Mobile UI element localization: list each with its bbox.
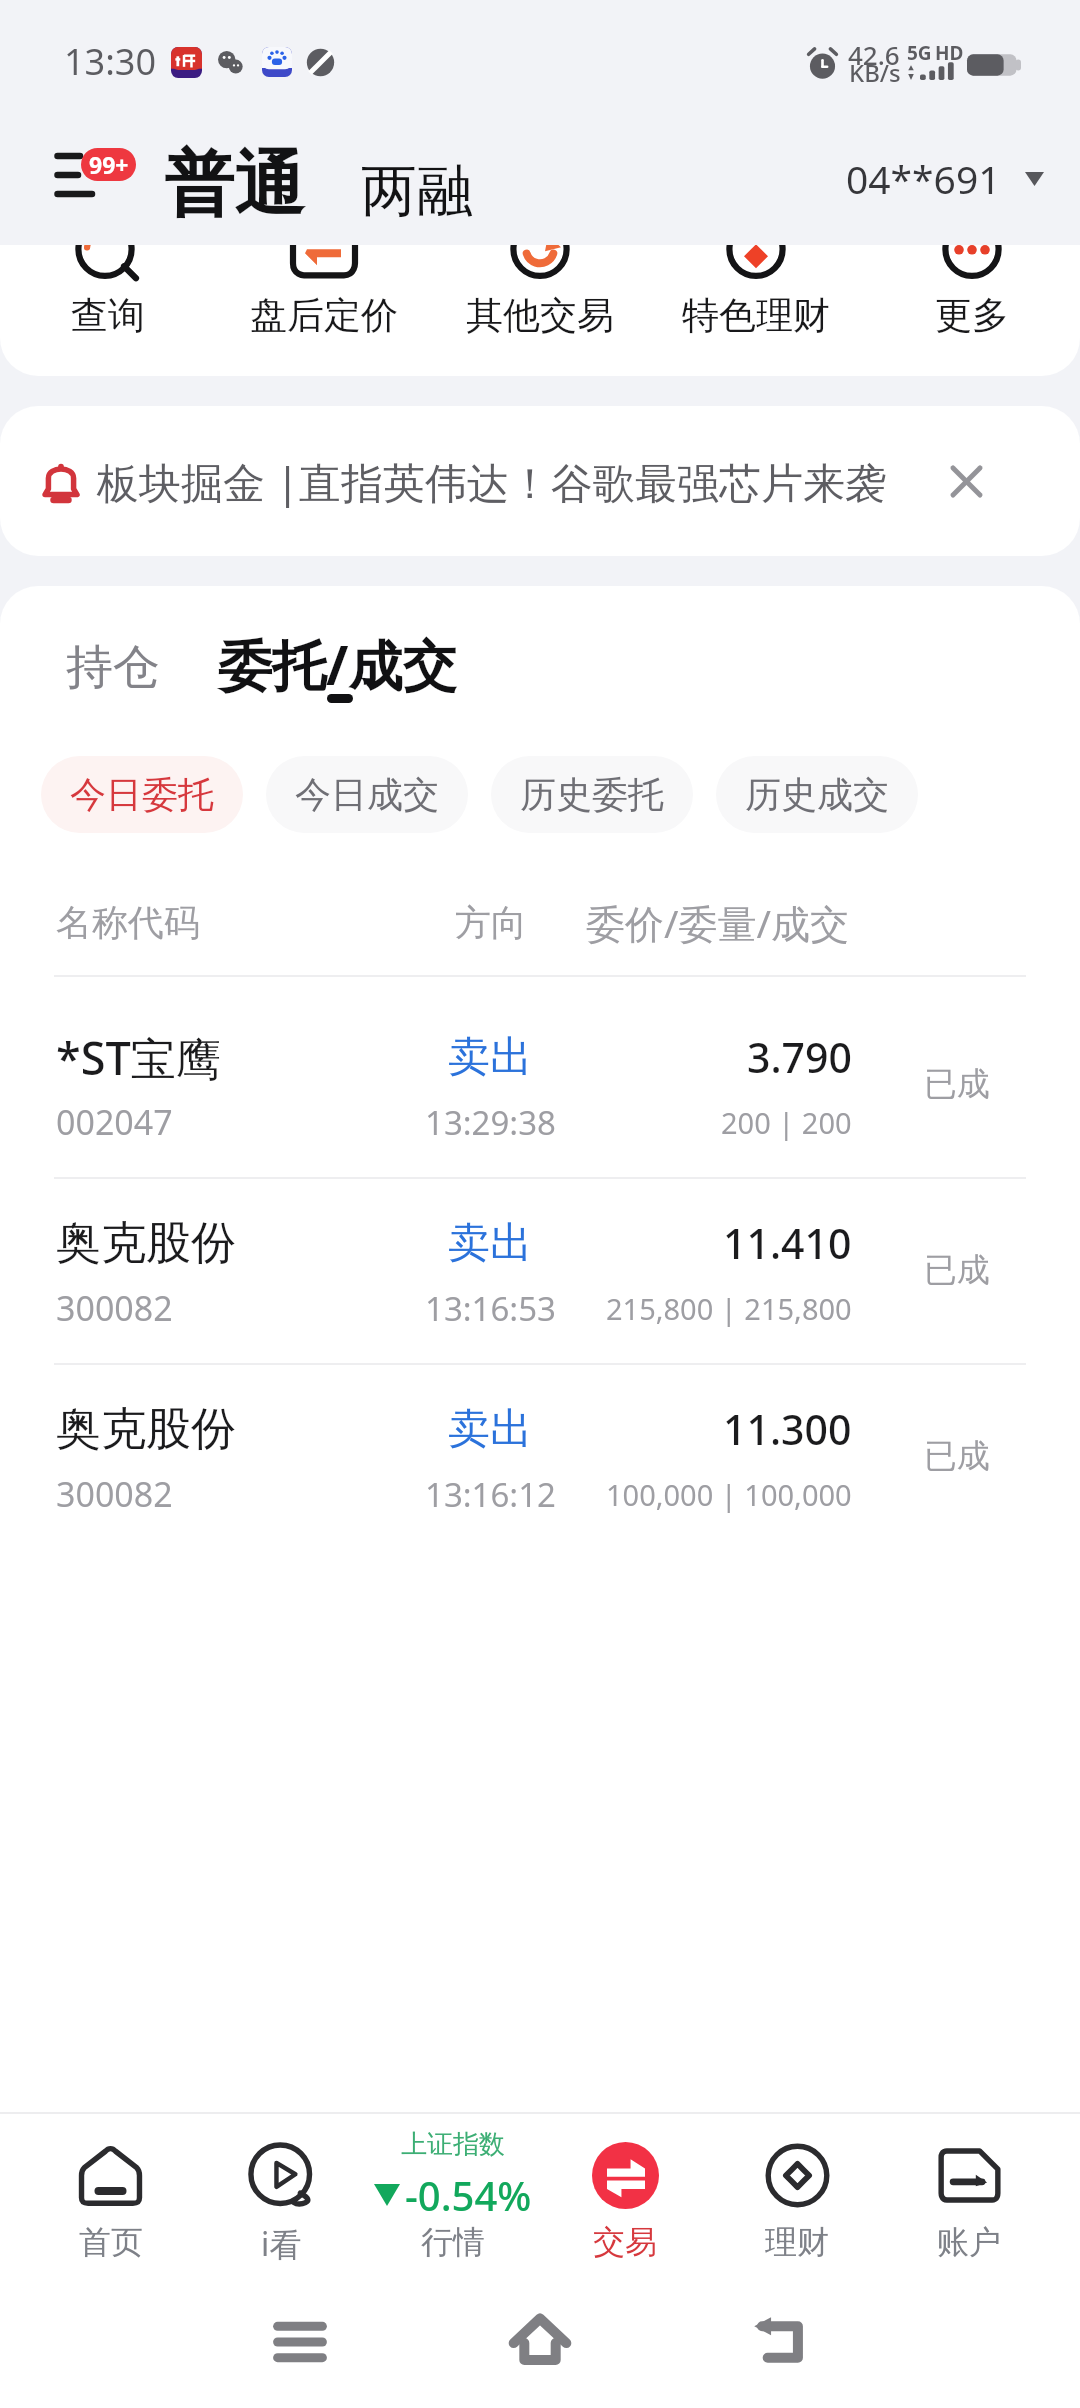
staticText: 200 | 200 — [721, 1103, 852, 1142]
button[interactable]: Home — [480, 2302, 600, 2382]
staticText: 其他交易 — [466, 292, 614, 339]
staticText: 行情 — [421, 2222, 485, 2262]
button[interactable]: 交易 — [539, 2114, 711, 2298]
staticText: 100,000 | 100,000 — [606, 1475, 852, 1514]
button[interactable]: 查询 — [0, 245, 216, 376]
staticText: 委价/委量/成交 — [586, 896, 850, 949]
button[interactable]: 特色理财 — [648, 245, 864, 376]
staticText: 历史成交 — [745, 772, 889, 817]
staticText: KB/s — [849, 56, 901, 89]
staticText: 42.6 — [848, 37, 900, 72]
staticText: 上证指数 — [401, 2128, 505, 2161]
button[interactable]: 首页 — [25, 2114, 196, 2298]
button[interactable]: 04**691 — [846, 152, 1080, 205]
staticText: 奥克股份 — [56, 1401, 236, 1458]
button[interactable]: 其他交易 — [432, 245, 648, 376]
button[interactable]: Recents — [240, 2302, 360, 2382]
staticText: 持仓 — [66, 638, 160, 697]
staticText: 13:16:53 — [425, 1286, 556, 1331]
staticText: 今日委托 — [70, 772, 214, 817]
button[interactable]: 今日成交 — [266, 756, 468, 833]
staticText: 名称代码 — [56, 900, 200, 945]
staticText: HD — [935, 40, 964, 66]
staticText: *ST宝鹰 — [56, 1027, 221, 1088]
staticText: 已成 — [924, 1063, 990, 1105]
button[interactable]: 板块掘金 |直指英伟达！谷歌最强芯片来袭 — [0, 406, 1080, 556]
staticText: 11.410 — [723, 1215, 852, 1271]
button[interactable]: Back — [720, 2302, 840, 2382]
staticText: 首页 — [79, 2222, 143, 2262]
staticText: 特色理财 — [682, 292, 830, 339]
staticText: 04**691 — [846, 152, 1001, 205]
button[interactable]: 奥克股份 — [0, 1365, 1080, 1549]
staticText: 历史委托 — [520, 772, 664, 817]
button[interactable]: 历史成交 — [716, 756, 918, 833]
button[interactable]: Menu — [44, 140, 144, 216]
staticText: 今日成交 — [295, 772, 439, 817]
staticText: 300082 — [56, 1285, 173, 1331]
button[interactable]: 奥克股份 — [0, 1179, 1080, 1363]
staticText: 查询 — [71, 292, 145, 339]
staticText: 已成 — [924, 1435, 990, 1477]
button[interactable]: 历史委托 — [491, 756, 693, 833]
staticText: 99+ — [89, 149, 129, 180]
staticText: i看 — [261, 2222, 302, 2266]
button[interactable]: i看 — [196, 2114, 367, 2298]
staticText: 交易 — [593, 2222, 657, 2262]
staticText: 两融 — [361, 156, 473, 227]
staticText: 13:29:38 — [425, 1100, 556, 1145]
staticText: 盘后定价 — [250, 292, 398, 339]
staticText: 13:30 — [64, 37, 157, 86]
button[interactable]: 更多 — [864, 245, 1080, 376]
staticText: 3.790 — [747, 1029, 852, 1085]
button[interactable]: 盘后定价 — [216, 245, 432, 376]
staticText: 13:16:12 — [425, 1472, 556, 1517]
staticText: 卖出 — [448, 1031, 532, 1084]
staticText: 委托/成交 — [218, 627, 457, 701]
staticText: 002047 — [56, 1099, 173, 1145]
staticText: 更多 — [935, 292, 1009, 339]
staticText: 卖出 — [448, 1217, 532, 1270]
button[interactable]: *ST宝鹰 — [0, 993, 1080, 1177]
staticText: 方向 — [455, 900, 527, 945]
button[interactable]: 理财 — [711, 2114, 883, 2298]
staticText: 理财 — [765, 2222, 829, 2262]
staticText: 11.300 — [723, 1401, 852, 1457]
staticText: 300082 — [56, 1471, 173, 1517]
button[interactable]: 账户 — [883, 2114, 1055, 2298]
staticText: 奥克股份 — [56, 1215, 236, 1272]
staticText: 板块掘金 |直指英伟达！谷歌最强芯片来袭 — [97, 453, 888, 510]
staticText: 5G — [907, 40, 932, 66]
staticText: 215,800 | 215,800 — [606, 1289, 852, 1328]
staticText: 卖出 — [448, 1403, 532, 1456]
staticText: 账户 — [937, 2222, 1001, 2262]
staticText: -0.54% — [405, 2168, 532, 2222]
button[interactable]: 今日委托 — [41, 756, 243, 833]
button[interactable]: Close banner — [943, 458, 989, 504]
staticText: 普通 — [164, 141, 304, 229]
staticText: 已成 — [924, 1249, 990, 1291]
button[interactable]: 上证指数 — [367, 2114, 539, 2298]
